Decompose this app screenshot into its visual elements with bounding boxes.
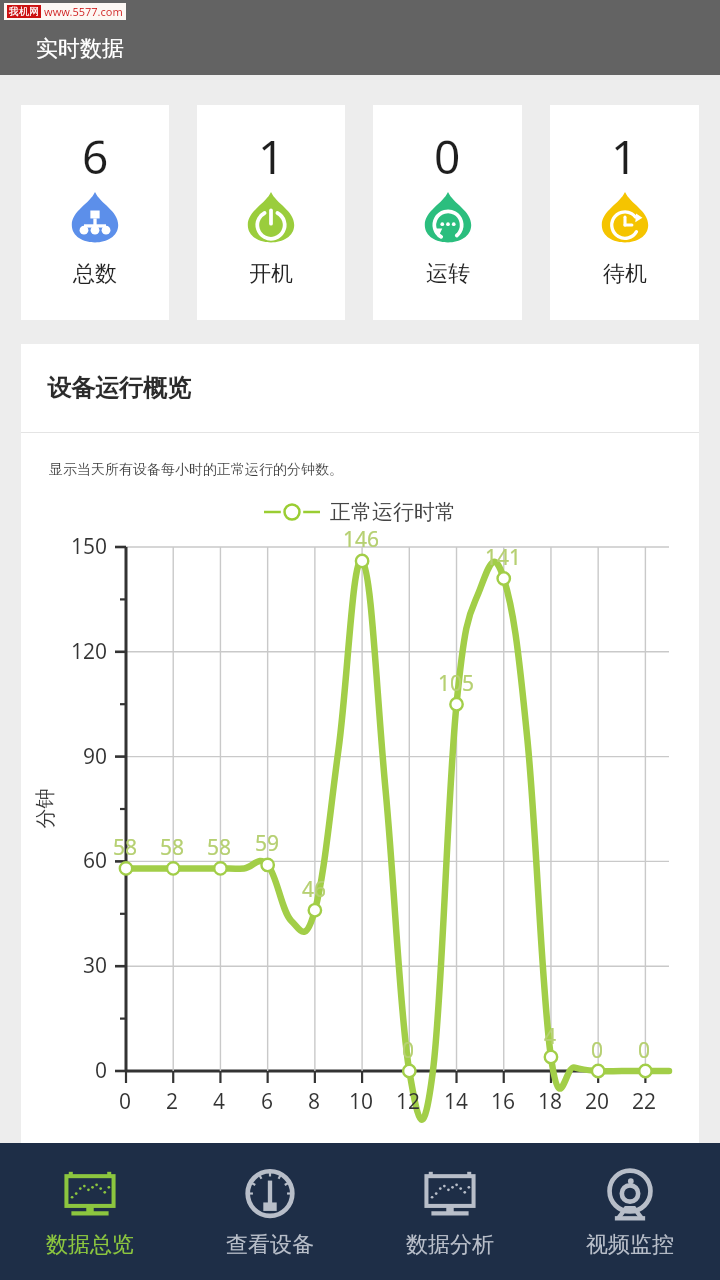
staticText: 4 (213, 1087, 226, 1116)
staticText: 46 (302, 875, 327, 904)
staticText: 14 (444, 1087, 469, 1116)
staticText: 60 (83, 846, 108, 875)
staticText: 141 (485, 543, 522, 572)
staticText: 0 (119, 1087, 132, 1116)
staticText: 实时数据 (36, 35, 124, 63)
staticText: 开机 (249, 260, 293, 288)
staticText: 146 (343, 525, 380, 554)
staticText: 22 (632, 1087, 657, 1116)
staticText: 58 (160, 833, 185, 862)
staticText: 0 (638, 1036, 651, 1065)
staticText: 2 (166, 1087, 179, 1116)
staticText: 运转 (426, 260, 470, 288)
staticText: 1 (258, 125, 285, 188)
staticText: 12 (396, 1087, 421, 1116)
staticText: 视频监控 (586, 1231, 674, 1259)
staticText: www.5577.com (44, 4, 123, 19)
staticText: 0 (95, 1056, 108, 1085)
button[interactable]: 0 (373, 105, 522, 320)
staticText: 我机网 (9, 5, 39, 18)
staticText: 58 (113, 833, 138, 862)
staticText: 6 (82, 125, 109, 188)
staticText: 90 (83, 742, 108, 771)
button[interactable]: 1 (550, 105, 699, 320)
staticText: 0 (402, 1036, 415, 1065)
button[interactable]: 数据分析 (360, 1143, 540, 1280)
staticText: 20 (585, 1087, 610, 1116)
staticText: 待机 (603, 260, 647, 288)
staticText: 105 (438, 669, 475, 698)
staticText: 设备运行概览 (47, 373, 191, 403)
staticText: 1 (611, 125, 638, 188)
staticText: 18 (538, 1087, 563, 1116)
staticText: 查看设备 (226, 1231, 314, 1259)
staticText: 0 (434, 125, 461, 188)
button[interactable]: 视频监控 (540, 1143, 720, 1280)
staticText: 数据分析 (406, 1231, 494, 1259)
staticText: 数据总览 (46, 1231, 134, 1259)
staticText: 150 (71, 532, 108, 561)
staticText: 10 (349, 1087, 374, 1116)
staticText: 分钟 (32, 788, 57, 828)
button[interactable]: 查看设备 (180, 1143, 360, 1280)
staticText: 8 (308, 1087, 321, 1116)
button[interactable]: 数据总览 (0, 1143, 180, 1280)
staticText: 59 (255, 829, 280, 858)
staticText: 正常运行时常 (330, 499, 456, 525)
staticText: 4 (544, 1022, 557, 1051)
staticText: 总数 (73, 260, 117, 288)
staticText: 58 (207, 833, 232, 862)
staticText: 120 (71, 637, 108, 666)
staticText: 6 (261, 1087, 274, 1116)
staticText: 30 (83, 951, 108, 980)
staticText: 显示当天所有设备每小时的正常运行的分钟数。 (49, 461, 343, 479)
staticText: 0 (591, 1036, 604, 1065)
button[interactable]: 6 (21, 105, 169, 320)
staticText: 16 (491, 1087, 516, 1116)
button[interactable]: 1 (197, 105, 345, 320)
